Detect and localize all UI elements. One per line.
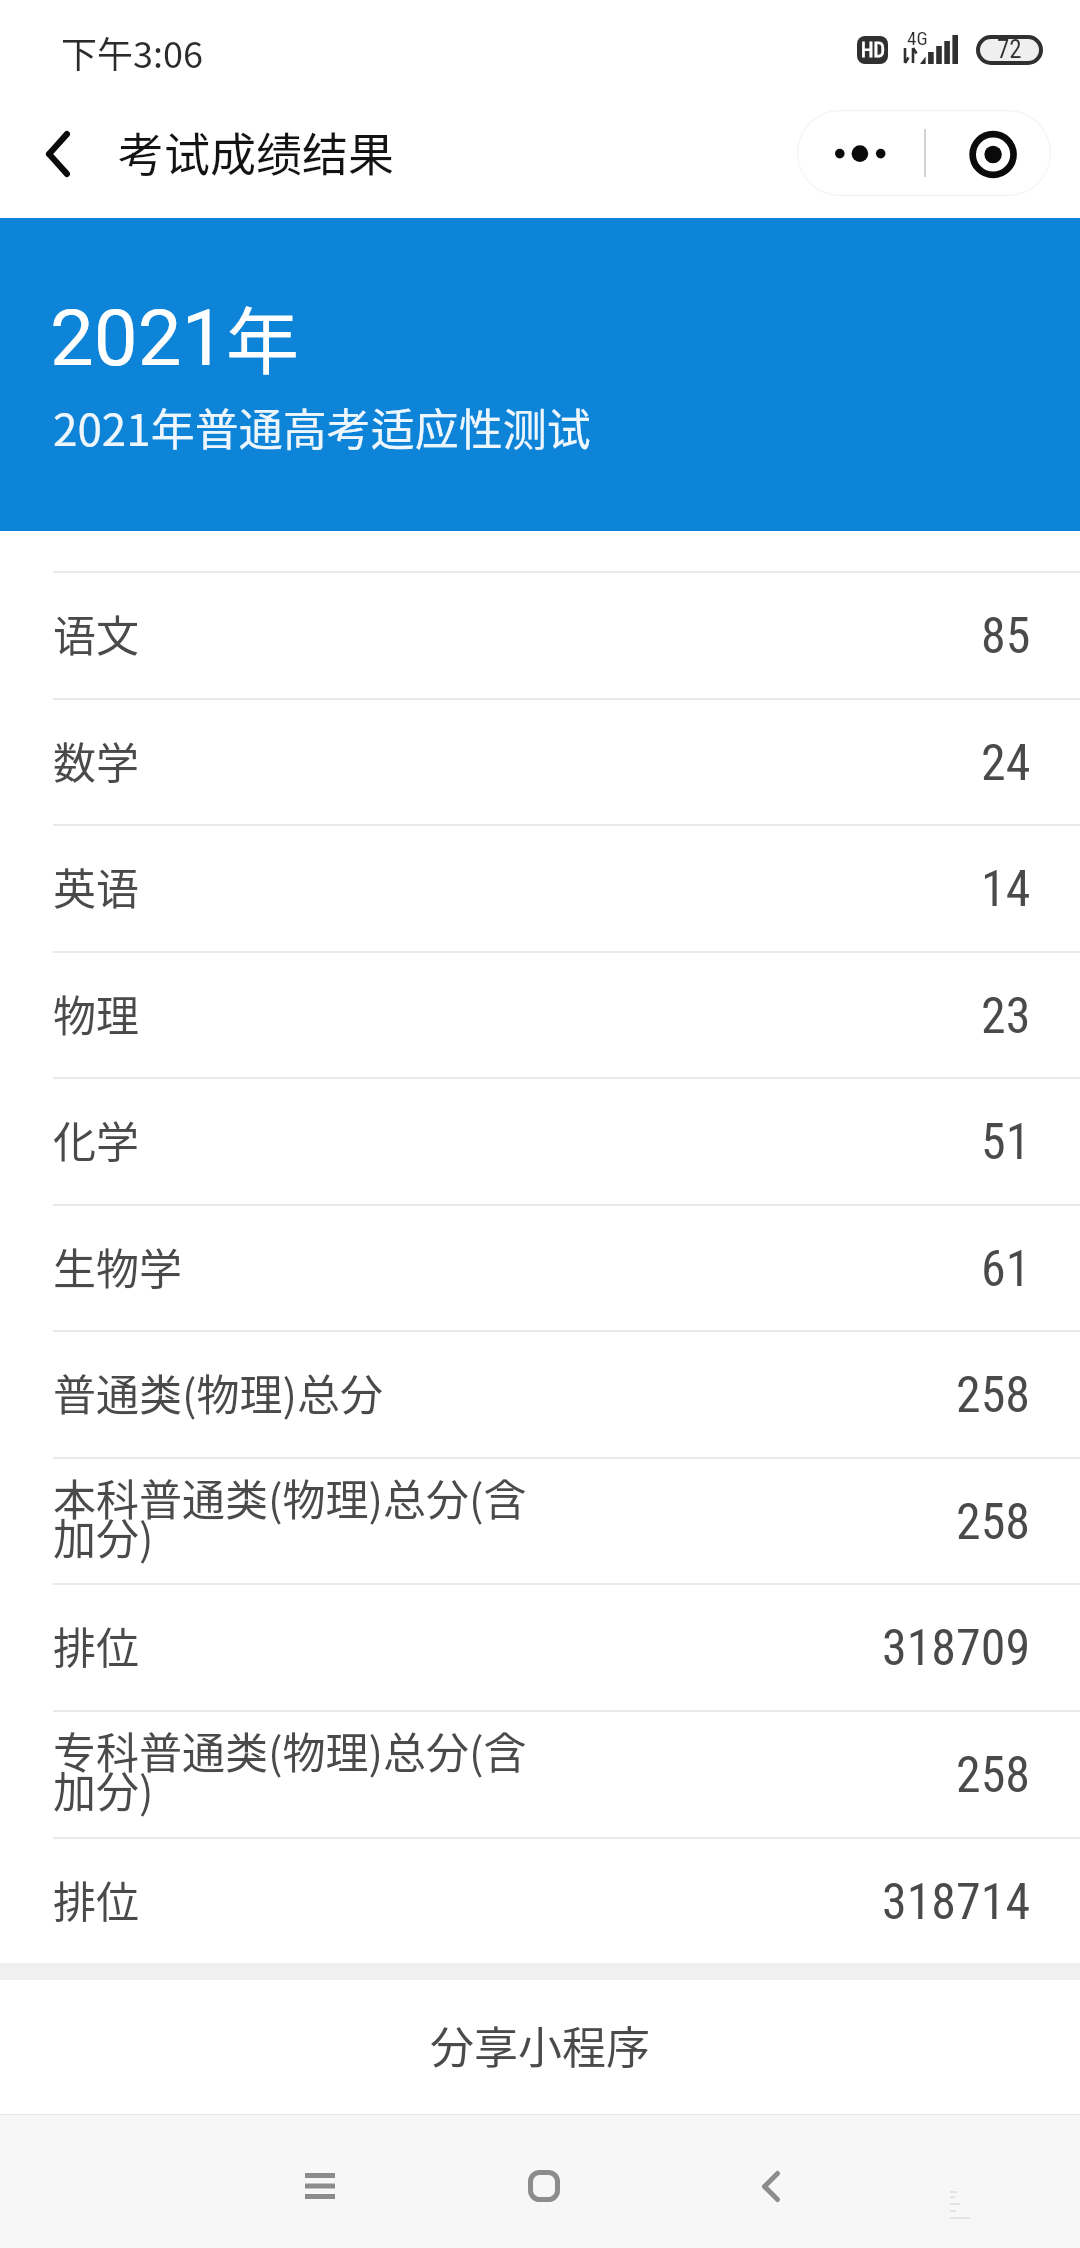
staticText: 普通类(物理)总分 <box>53 1361 384 1423</box>
staticText: 加分) <box>53 1758 154 1820</box>
staticText: 24 <box>981 734 1031 793</box>
staticText: 51 <box>981 1113 1031 1172</box>
button[interactable]: More options <box>797 110 924 196</box>
staticText: 物理 <box>53 982 139 1044</box>
staticText: 分享小程序 <box>430 2013 650 2077</box>
staticText: HD <box>861 38 885 61</box>
button[interactable]: Home <box>489 2131 599 2241</box>
staticText: 排位 <box>53 1868 139 1930</box>
staticText: 数学 <box>53 729 139 791</box>
staticText: 语文 <box>53 602 139 664</box>
button[interactable]: 化学 <box>0 1078 1080 1204</box>
button[interactable]: 本科普通类(物理)总分(含 <box>0 1458 1080 1584</box>
staticText: 318714 <box>882 1873 1031 1932</box>
staticText: 14 <box>981 860 1031 919</box>
staticText: 英语 <box>53 855 139 917</box>
staticText: 2021 <box>50 293 226 384</box>
button[interactable]: 专科普通类(物理)总分(含 <box>0 1711 1080 1837</box>
staticText: 23 <box>981 987 1031 1046</box>
staticText: 4G <box>907 27 928 49</box>
button[interactable]: Back <box>3 90 113 218</box>
button[interactable]: 排位 <box>0 1584 1080 1710</box>
staticText: 本科普通类(物理)总分(含 <box>53 1466 527 1528</box>
staticText: 考试成绩结果 <box>118 118 394 185</box>
button[interactable]: Back <box>716 2131 826 2241</box>
staticText: 258 <box>956 1366 1031 1425</box>
staticText: 化学 <box>53 1108 139 1170</box>
button[interactable]: 排位 <box>0 1838 1080 1964</box>
staticText: 61 <box>981 1240 1031 1299</box>
staticText: 生物学 <box>53 1235 182 1297</box>
staticText: 下午3:06 <box>61 26 203 78</box>
button[interactable]: 分享小程序 <box>0 1980 1080 2114</box>
button[interactable]: 数学 <box>0 699 1080 825</box>
button[interactable]: Close mini program <box>924 110 1051 196</box>
staticText: 排位 <box>53 1614 139 1676</box>
button[interactable]: 普通类(物理)总分 <box>0 1331 1080 1457</box>
staticText: 258 <box>956 1746 1031 1805</box>
staticText: 72 <box>997 35 1022 64</box>
staticText: 258 <box>956 1493 1031 1552</box>
staticText: 专科普通类(物理)总分(含 <box>53 1719 527 1781</box>
button[interactable]: 英语 <box>0 825 1080 951</box>
staticText: 318709 <box>882 1619 1031 1678</box>
staticText: 85 <box>981 607 1031 666</box>
staticText: 加分) <box>53 1505 154 1567</box>
button[interactable]: 物理 <box>0 952 1080 1078</box>
button[interactable]: Recent apps <box>265 2131 375 2241</box>
button[interactable]: 生物学 <box>0 1205 1080 1331</box>
staticText: 年 <box>226 283 299 389</box>
button[interactable]: 语文 <box>0 572 1080 698</box>
staticText: 2021年普通高考适应性测试 <box>53 395 591 459</box>
